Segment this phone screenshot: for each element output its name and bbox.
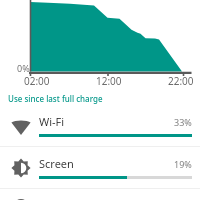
other: Screen [11,158,31,178]
button[interactable]: Screen [0,147,200,188]
staticText: 12:00 [96,74,122,88]
staticText: Wi-Fi [39,114,65,129]
staticText: 02:00 [24,74,50,88]
staticText: Screen [39,156,74,171]
other: Android OS [11,198,31,200]
button[interactable]: Wi-Fi [0,105,200,146]
staticText: 19% [174,158,192,170]
staticText: 33% [174,116,192,128]
staticText: 22:00 [168,74,194,88]
staticText: Use since last full charge [8,93,103,104]
staticText: 0% [17,62,30,74]
other: Wi-Fi [11,116,31,136]
